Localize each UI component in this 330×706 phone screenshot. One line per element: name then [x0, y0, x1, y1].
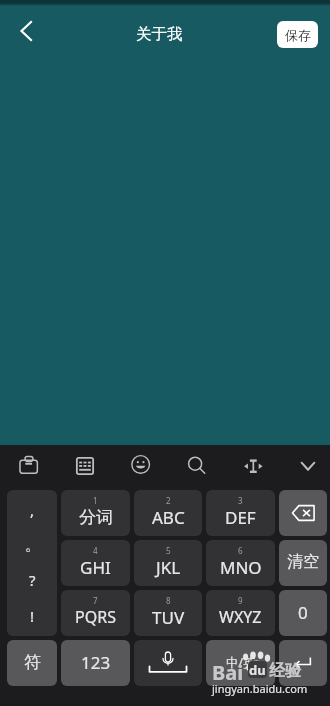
- button[interactable]: Space, voice input: [134, 640, 202, 686]
- staticText: jingyan.baidu.com: [212, 681, 308, 696]
- button[interactable]: Punctuation: [7, 490, 57, 636]
- staticText: DEF: [225, 506, 256, 529]
- button[interactable]: Keyboard layout: [64, 447, 106, 485]
- button[interactable]: Move cursor: [231, 447, 273, 485]
- button[interactable]: 3: [206, 490, 275, 536]
- button[interactable]: Search: [175, 447, 217, 485]
- staticText: 7: [93, 595, 98, 606]
- button[interactable]: 中/英: [206, 640, 275, 686]
- button[interactable]: 0: [279, 590, 327, 636]
- staticText: 2: [166, 495, 171, 506]
- button[interactable]: Backspace: [279, 490, 327, 536]
- staticText: Bai: [212, 659, 244, 686]
- button[interactable]: 6: [206, 540, 275, 586]
- staticText: 123: [81, 651, 111, 674]
- button[interactable]: Clipboard: [8, 447, 50, 485]
- staticText: 关于我: [136, 24, 183, 44]
- button[interactable]: 9: [206, 590, 275, 636]
- staticText: 。: [25, 536, 40, 555]
- staticText: ?: [29, 570, 36, 590]
- staticText: ABC: [152, 506, 185, 529]
- button[interactable]: 清空: [279, 540, 327, 586]
- staticText: 9: [238, 595, 243, 606]
- button[interactable]: 8: [134, 590, 202, 636]
- staticText: MNO: [220, 556, 262, 579]
- staticText: du: [249, 661, 266, 678]
- button[interactable]: Back: [10, 11, 50, 51]
- staticText: 保存: [285, 27, 311, 43]
- staticText: 4: [93, 545, 98, 556]
- staticText: 分词: [79, 507, 113, 528]
- staticText: WXYZ: [219, 606, 262, 628]
- button[interactable]: 2: [134, 490, 202, 536]
- button[interactable]: Enter: [279, 640, 327, 686]
- staticText: 中/英: [226, 654, 256, 671]
- staticText: 8: [166, 595, 171, 606]
- button[interactable]: 符: [7, 640, 57, 686]
- staticText: 清空: [287, 552, 319, 572]
- button[interactable]: 7: [61, 590, 130, 636]
- staticText: PQRS: [75, 606, 116, 628]
- staticText: JKL: [156, 556, 181, 579]
- staticText: 3: [238, 495, 243, 506]
- staticText: !: [30, 606, 35, 626]
- button[interactable]: 1: [61, 490, 130, 536]
- button[interactable]: 123: [61, 640, 130, 686]
- staticText: 经验: [269, 661, 301, 681]
- button[interactable]: 保存: [277, 21, 318, 48]
- staticText: 5: [166, 545, 171, 556]
- button[interactable]: Emoji: [119, 447, 161, 485]
- staticText: GHI: [80, 556, 111, 579]
- staticText: ,: [30, 500, 35, 520]
- button[interactable]: Hide keyboard: [287, 447, 329, 485]
- staticText: 6: [238, 545, 243, 556]
- staticText: 0: [298, 601, 308, 624]
- staticText: 符: [24, 652, 41, 673]
- button[interactable]: 4: [61, 540, 130, 586]
- staticText: TUV: [152, 606, 185, 629]
- staticText: 1: [93, 495, 98, 506]
- button[interactable]: 5: [134, 540, 202, 586]
